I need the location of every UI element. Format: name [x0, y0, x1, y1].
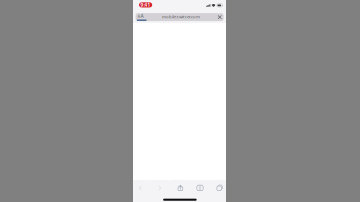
- staticText: mobile.twitter.com: [162, 14, 200, 20]
- button[interactable]: Bookmarks: [191, 180, 209, 196]
- button[interactable]: Back: [131, 180, 149, 196]
- button[interactable]: Tabs: [210, 180, 229, 196]
- button[interactable]: Page settings: [135, 12, 145, 20]
- staticText: ᴀA: [137, 12, 143, 19]
- staticText: 9:41: [141, 2, 151, 8]
- button[interactable]: Share: [171, 180, 190, 196]
- button[interactable]: mobile.twitter.com: [153, 13, 209, 21]
- button[interactable]: Stop loading: [216, 13, 224, 21]
